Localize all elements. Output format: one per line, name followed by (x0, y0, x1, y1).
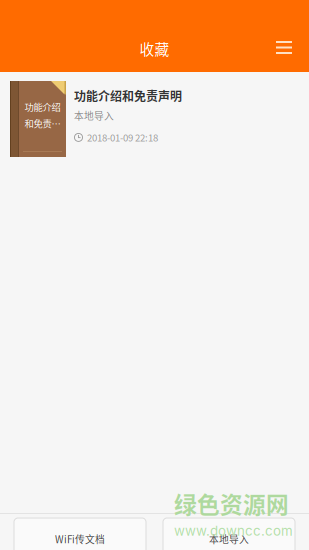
button[interactable]: WiFi传文档 (14, 518, 146, 550)
staticText: 功能介绍 (24, 100, 60, 113)
button[interactable]: Menu (264, 33, 304, 62)
staticText: 收藏 (139, 38, 169, 59)
staticText: 和免责… (24, 116, 60, 130)
button[interactable]: 功能介绍 (0, 72, 309, 166)
staticText: www.downcc.com (174, 523, 293, 539)
staticText: WiFi传文档 (55, 532, 105, 546)
staticText: 2018-01-09 22:18 (87, 130, 158, 144)
staticText: 本地导入 (209, 532, 249, 546)
staticText: 绿色资源网 (174, 487, 289, 520)
staticText: 本地导入 (74, 108, 114, 122)
button[interactable]: 本地导入 (163, 518, 295, 550)
staticText: 功能介绍和免责声明 (74, 87, 182, 104)
